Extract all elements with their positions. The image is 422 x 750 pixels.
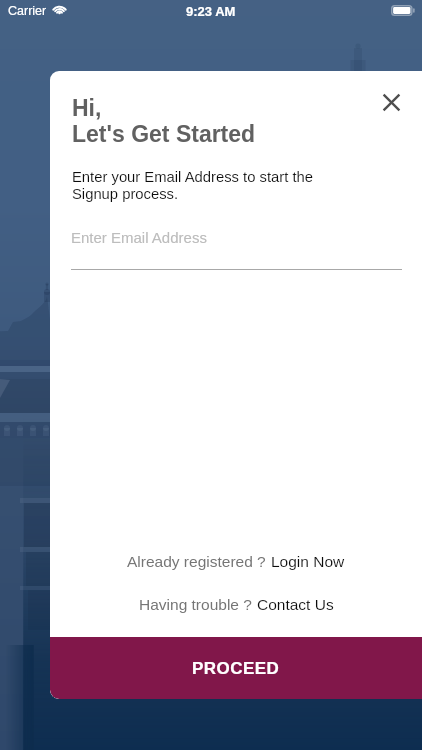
- staticText: Carrier: [8, 4, 47, 18]
- button[interactable]: Close: [372, 83, 410, 121]
- staticText: Enter your Email Address to start the Si…: [72, 169, 313, 202]
- staticText: Hi,: [72, 95, 102, 121]
- staticText: Login Now: [271, 553, 345, 570]
- staticText: Let's Get Started: [72, 121, 256, 147]
- button[interactable]: PROCEED: [50, 637, 422, 699]
- staticText: Having trouble ?: [139, 596, 257, 613]
- button[interactable]: Already registered ?: [50, 553, 422, 570]
- staticText: 9:23 AM: [186, 4, 236, 19]
- button[interactable]: Having trouble ?: [50, 596, 422, 613]
- staticText: Enter Email Address: [71, 229, 207, 246]
- staticText: Already registered ?: [127, 553, 271, 570]
- staticText: PROCEED: [192, 659, 280, 678]
- staticText: Contact Us: [257, 596, 334, 613]
